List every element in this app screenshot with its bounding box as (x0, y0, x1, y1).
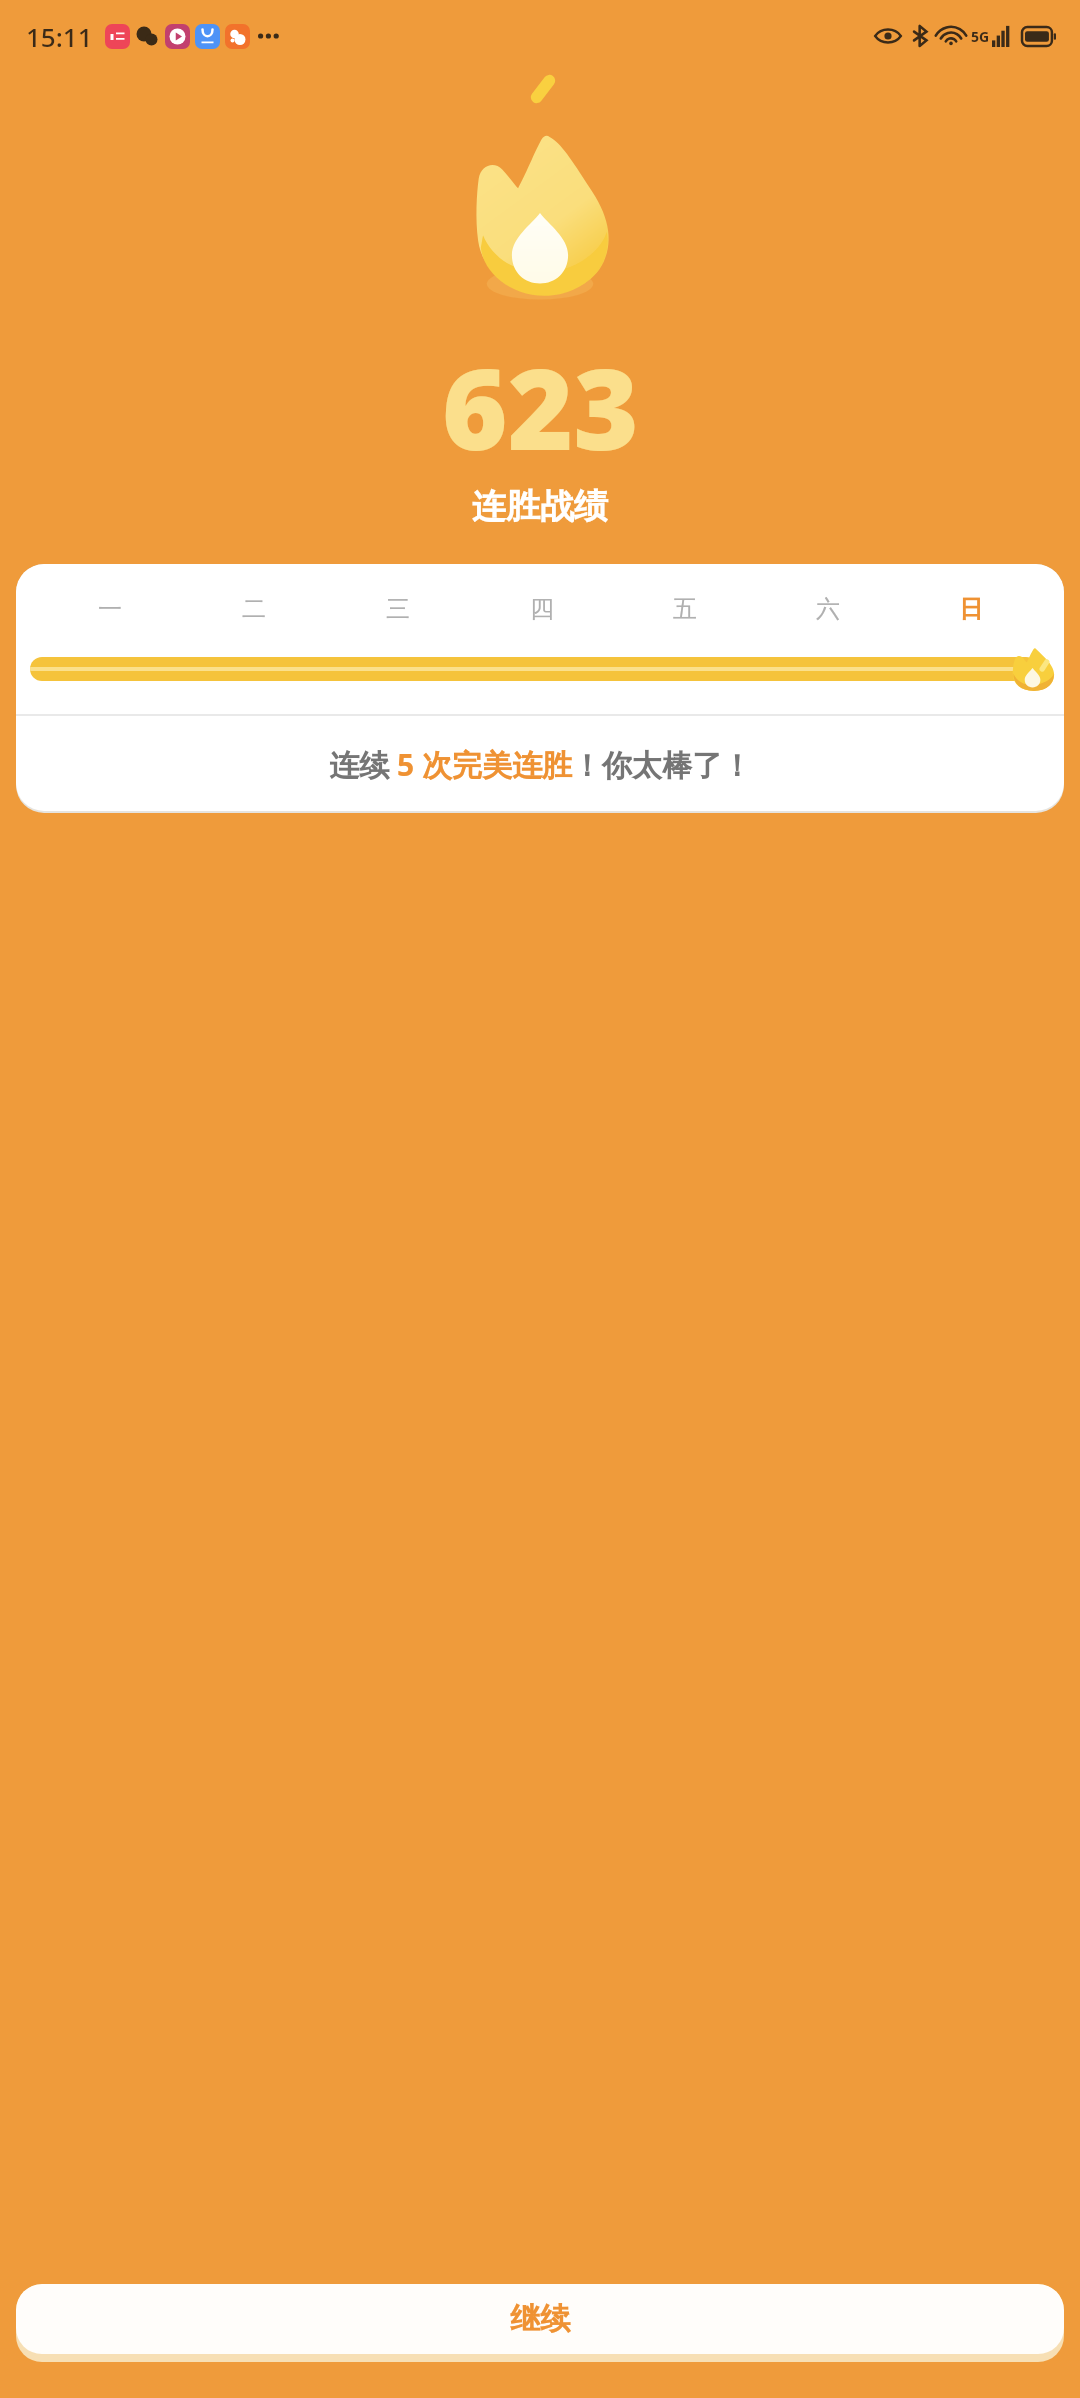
staticText: 六 (816, 594, 840, 624)
button[interactable]: 继续 (16, 2284, 1064, 2362)
staticText: 15:11 (26, 19, 93, 54)
staticText: 5G (971, 27, 990, 46)
staticText: 连续 5 次完美连胜！你太棒了！ (329, 744, 752, 785)
staticText: 一 (98, 594, 122, 624)
staticText: 二 (242, 594, 266, 624)
staticText: 五 (673, 594, 697, 624)
staticText: 三 (386, 594, 410, 624)
staticText: 连胜战绩 (472, 485, 608, 528)
staticText: 日 (959, 594, 983, 624)
other: 连胜战绩 623 (0, 0, 1080, 2398)
staticText: 623 (442, 330, 639, 483)
staticText: 四 (530, 594, 554, 624)
staticText: 继续 (510, 2300, 570, 2338)
